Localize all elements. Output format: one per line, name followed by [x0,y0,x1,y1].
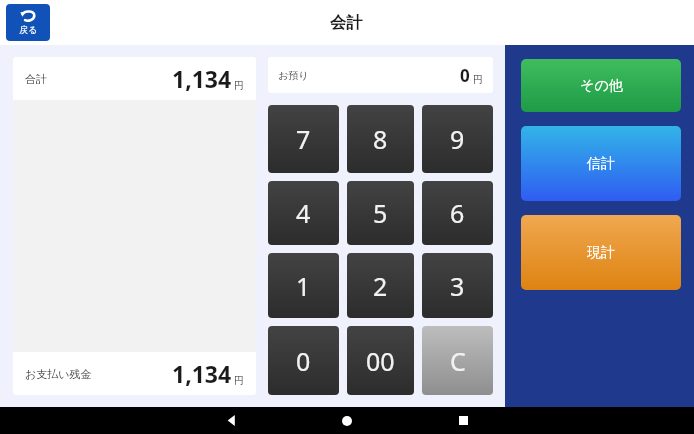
button[interactable]: 3 [422,253,493,318]
button[interactable]: 信計 [521,126,681,201]
button[interactable]: 5 [347,181,414,245]
staticText: 円 [234,79,244,92]
staticText: 4 [296,196,311,230]
button[interactable]: その他 [521,59,681,112]
button[interactable]: 4 [268,181,339,245]
staticText: 9 [450,122,465,156]
staticText: 1,134 [172,63,232,94]
staticText: 0 [460,64,470,87]
button[interactable]: Home [323,407,371,434]
button[interactable]: 8 [347,105,414,173]
button[interactable]: 現計 [521,215,681,290]
staticText: その他 [580,77,623,95]
button[interactable]: 0 [268,326,339,395]
staticText: 1,134 [172,358,232,389]
button[interactable]: 7 [268,105,339,173]
staticText: 3 [450,269,465,303]
staticText: 0 [296,344,311,378]
button[interactable]: 戻る [6,4,50,41]
staticText: 7 [296,122,311,156]
staticText: C [450,344,466,378]
staticText: 1 [296,269,311,303]
staticText: 会計 [330,13,362,33]
button[interactable]: 1 [268,253,339,318]
staticText: 現計 [587,244,615,262]
staticText: 合計 [25,72,47,86]
staticText: 00 [366,344,395,378]
staticText: 2 [373,269,388,303]
staticText: 信計 [587,155,615,173]
button[interactable]: 6 [422,181,493,245]
staticText: 6 [450,196,465,230]
staticText: 円 [473,73,483,86]
button[interactable]: Back [207,407,255,434]
button[interactable]: C [422,326,493,395]
staticText: 円 [234,374,244,387]
staticText: お支払い残金 [25,367,92,381]
button[interactable]: 2 [347,253,414,318]
staticText: 8 [373,122,388,156]
button[interactable]: 00 [347,326,414,395]
button[interactable]: 9 [422,105,493,173]
button[interactable]: Recents [439,407,487,434]
staticText: お預り [278,69,309,82]
staticText: 5 [373,196,388,230]
staticText: 戻る [19,24,38,35]
